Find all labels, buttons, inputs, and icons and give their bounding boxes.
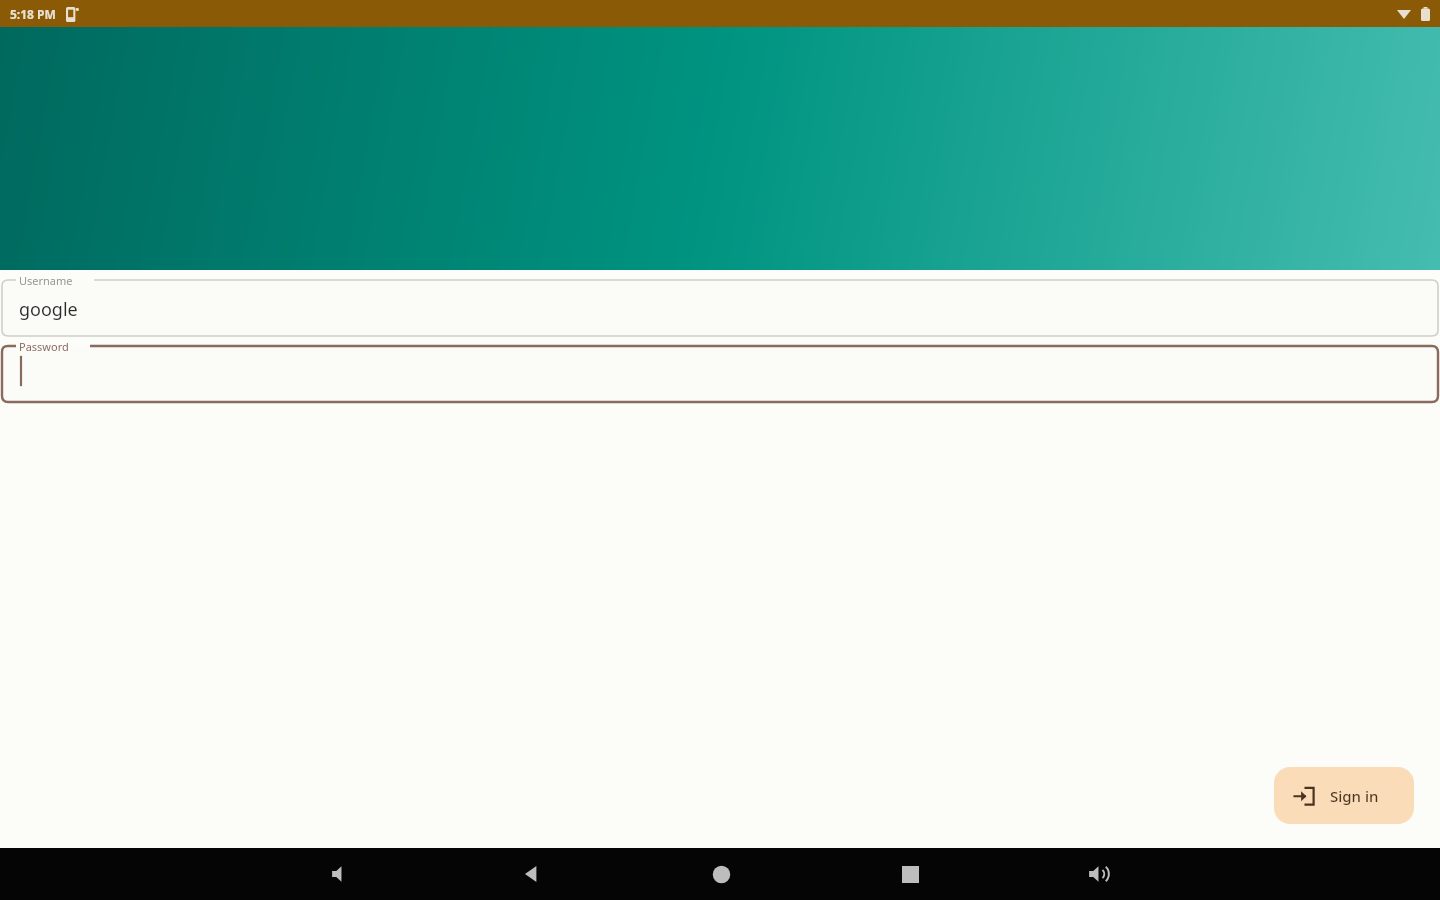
staticText: Username	[19, 273, 73, 288]
staticText: Password	[19, 339, 69, 354]
staticText: Sign in	[1330, 786, 1379, 806]
button[interactable]: Home	[688, 848, 754, 900]
staticText: 5:18 PM	[10, 6, 56, 22]
button[interactable]: Volume up	[1066, 848, 1132, 900]
button[interactable]: Recent apps	[877, 848, 943, 900]
staticText: google	[19, 297, 78, 322]
button[interactable]: Password	[2, 336, 1438, 402]
button[interactable]: Volume down	[309, 848, 375, 900]
button[interactable]: Back	[499, 848, 565, 900]
button[interactable]: Username	[2, 270, 1438, 336]
button[interactable]: Sign in	[1274, 767, 1414, 824]
